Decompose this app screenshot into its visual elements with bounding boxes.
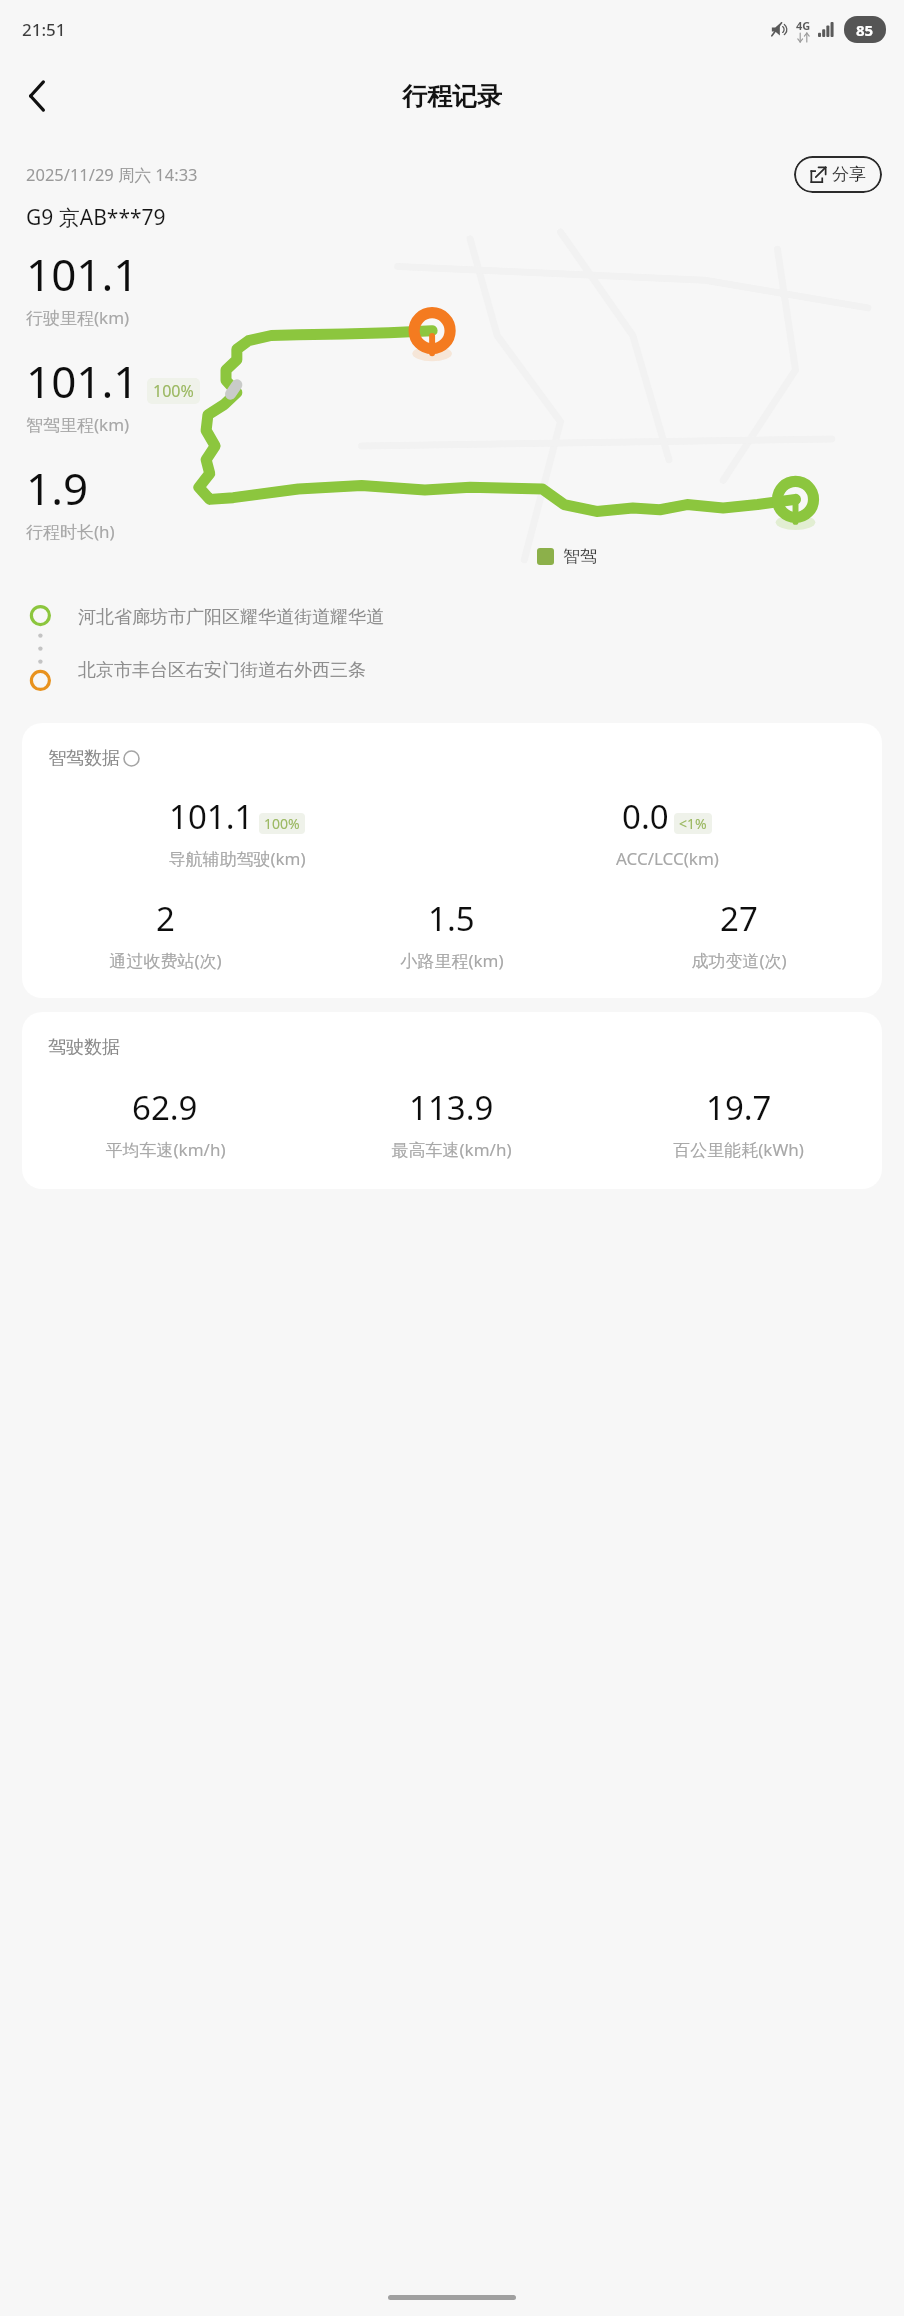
staticText: 21:51	[22, 18, 66, 41]
button[interactable]: 智驾数据	[22, 723, 882, 998]
staticText: 62.9	[132, 1085, 198, 1130]
staticText: 北京市丰台区右安门街道右外西三条	[78, 659, 366, 682]
staticText: 驾驶数据	[48, 1036, 120, 1059]
staticText: 分享	[832, 164, 866, 185]
staticText: 113.9	[409, 1085, 494, 1130]
staticText: 行驶里程(km)	[26, 306, 130, 329]
staticText: 平均车速(km/h)	[105, 1138, 226, 1161]
staticText: 百公里能耗(kWh)	[673, 1138, 804, 1161]
staticText: 小路里程(km)	[400, 949, 504, 972]
staticText: G9 京AB***79	[26, 203, 166, 232]
staticText: 100%	[264, 814, 300, 833]
staticText: 最高车速(km/h)	[391, 1138, 512, 1161]
staticText: 导航辅助驾驶(km)	[168, 847, 306, 870]
staticText: <1%	[679, 814, 707, 833]
staticText: 101.1	[26, 244, 139, 304]
button[interactable]: Back	[10, 69, 64, 123]
staticText: 27	[720, 896, 758, 941]
staticText: 4G	[796, 18, 811, 33]
staticText: 100%	[153, 380, 194, 402]
staticText: 行程记录	[402, 81, 502, 112]
staticText: 通过收费站(次)	[109, 949, 222, 972]
button[interactable]: 驾驶数据	[22, 1012, 882, 1189]
staticText: 智驾里程(km)	[26, 413, 130, 436]
staticText: 0.0	[622, 794, 669, 839]
staticText: ACC/LCC(km)	[616, 847, 719, 870]
staticText: 1.9	[26, 458, 89, 518]
staticText: 河北省廊坊市广阳区耀华道街道耀华道	[78, 606, 384, 629]
staticText: 101.1	[26, 351, 139, 411]
staticText: 行程时长(h)	[26, 520, 115, 543]
staticText: 1.5	[428, 896, 475, 941]
staticText: 2025/11/29 周六 14:33	[26, 163, 198, 186]
staticText: 成功变道(次)	[691, 949, 787, 972]
staticText: 85	[856, 20, 874, 40]
staticText: 智驾	[563, 546, 597, 567]
staticText: 101.1	[169, 794, 254, 839]
staticText: 智驾数据	[48, 747, 120, 770]
button[interactable]: 分享	[794, 156, 882, 193]
staticText: 19.7	[706, 1085, 772, 1130]
staticText: 2	[156, 896, 175, 941]
